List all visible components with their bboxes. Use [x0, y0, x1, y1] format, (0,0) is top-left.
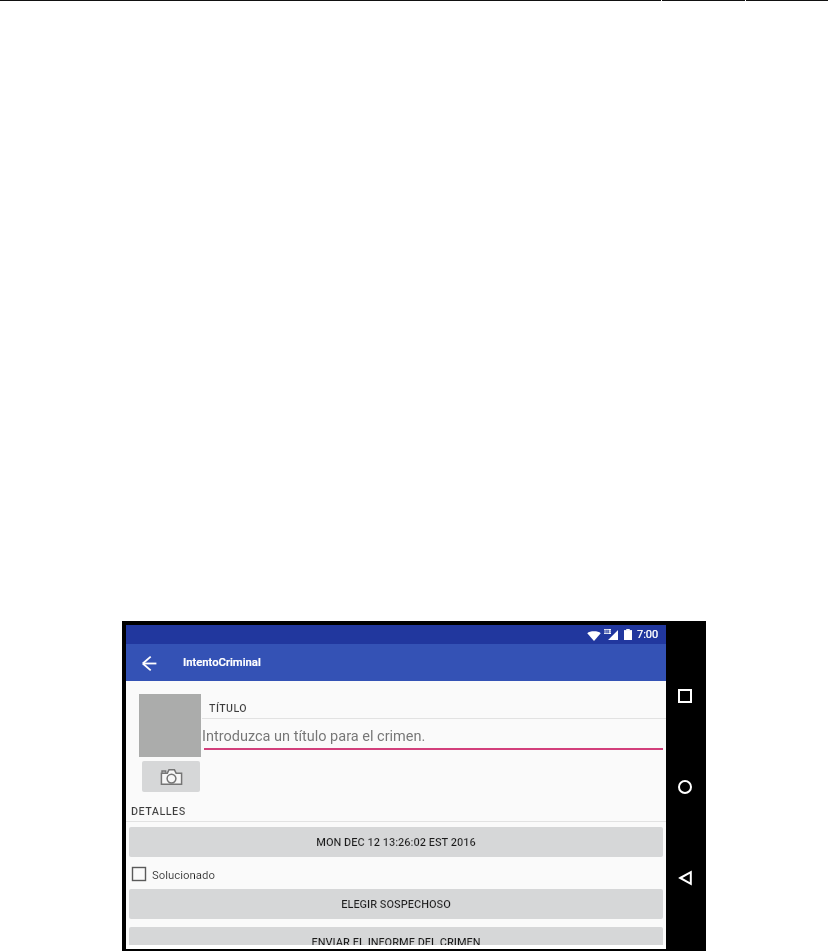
staticText: MON DEC 12 13:26:02 EST 2016 — [316, 836, 476, 849]
button[interactable]: Home — [671, 773, 699, 801]
staticText: ENVIAR EL INFORME DEL CRIMEN — [311, 936, 481, 945]
button[interactable]: ELEGIR SOSPECHOSO — [129, 889, 663, 919]
button[interactable]: Solucionado — [126, 860, 666, 888]
staticText: 7:00 — [637, 628, 659, 641]
button[interactable]: Back — [671, 864, 699, 892]
staticText: DETALLES — [131, 805, 186, 818]
staticText: Introduzca un título para el crimen. — [202, 728, 426, 745]
button[interactable]: Recents — [671, 682, 699, 710]
button[interactable]: MON DEC 12 13:26:02 EST 2016 — [129, 827, 663, 857]
staticText: IntentoCriminal — [183, 656, 261, 669]
button[interactable]: ENVIAR EL INFORME DEL CRIMEN — [129, 927, 663, 945]
button[interactable]: Take photo — [142, 761, 200, 792]
staticText: Solucionado — [152, 868, 215, 881]
staticText: ELEGIR SOSPECHOSO — [341, 898, 451, 911]
staticText: TÍTULO — [209, 702, 248, 714]
button[interactable]: Back — [134, 648, 164, 678]
